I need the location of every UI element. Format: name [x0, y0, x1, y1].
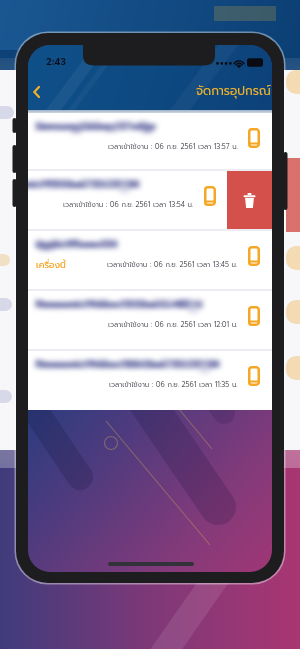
staticText: Panasonic Pinbox 50A Dual TD LTE_D4	[38, 356, 223, 370]
staticText: Panasonic P55 Dual TD LTE_D4	[28, 176, 137, 190]
staticText: Apple iPhone 6 K	[34, 236, 117, 250]
staticText: Panasonic Pinbox 50A Dual TD LTE_D4	[35, 356, 220, 370]
staticText: เครื่องนี้	[36, 258, 66, 272]
staticText: เวลาเข้าใช้งาน : 06 ก.ย. 2561 เวลา 13:54…	[63, 199, 194, 210]
staticText: Panasonic Pinbox 50A Dual TD LTE_D4	[32, 356, 217, 370]
staticText: 2:43	[46, 54, 66, 67]
staticText: Panasonic P55 Dual TD LTE_D4	[28, 176, 141, 190]
staticText: Samsung Galaxy S7 edge	[35, 118, 156, 132]
staticText: Panasonic Pinbox 53 Dual G-462_A	[36, 296, 204, 310]
staticText: Apple iPhone 6 K	[39, 236, 122, 250]
button[interactable]	[28, 171, 228, 229]
button[interactable]: จัดการอุปกรณ์	[196, 82, 271, 100]
staticText: Panasonic Pinbox 53 Dual G-462_A	[31, 296, 199, 310]
staticText: Panasonic Pinbox 50A Dual TD LTE_D4	[39, 356, 224, 370]
button[interactable]	[28, 291, 272, 349]
staticText: Panasonic P55 Dual TD LTE_D4	[28, 176, 136, 190]
staticText: Samsung Galaxy S7 edge	[39, 118, 160, 132]
staticText: Panasonic Pinbox 50A Dual TD LTE_D4	[31, 356, 216, 370]
staticText: Panasonic Pinbox 53 Dual G-462_A	[39, 296, 207, 310]
staticText: Panasonic P55 Dual TD LTE_D4	[28, 176, 144, 190]
button[interactable]: Delete	[227, 171, 272, 229]
staticText: Panasonic Pinbox 50A Dual TD LTE_D4	[36, 356, 221, 370]
staticText: Apple iPhone 6 K	[35, 236, 118, 250]
staticText: Apple iPhone 6 K	[32, 236, 115, 250]
staticText: Apple iPhone 6 K	[38, 236, 121, 250]
staticText: เวลาเข้าใช้งาน : 06 ก.ย. 2561 เวลา 12:01…	[108, 319, 238, 330]
staticText: Samsung Galaxy S7 edge	[31, 118, 152, 132]
staticText: Samsung Galaxy S7 edge	[34, 118, 155, 132]
staticText: Samsung Galaxy S7 edge	[32, 118, 153, 132]
staticText: Apple iPhone 6 K	[36, 236, 119, 250]
button[interactable]	[28, 113, 272, 169]
staticText: Samsung Galaxy S7 edge	[38, 118, 159, 132]
staticText: Panasonic Pinbox 53 Dual G-462_A	[32, 296, 200, 310]
staticText: Panasonic Pinbox 53 Dual G-462_A	[38, 296, 206, 310]
staticText: Panasonic P55 Dual TD LTE_D4	[28, 176, 140, 190]
staticText: Panasonic P55 Dual TD LTE_D4	[28, 176, 139, 190]
staticText: Panasonic Pinbox 53 Dual G-462_A	[34, 296, 202, 310]
staticText: Panasonic P55 Dual TD LTE_D4	[28, 176, 143, 190]
staticText: เวลาเข้าใช้งาน : 06 ก.ย. 2561 เวลา 13:45…	[107, 259, 238, 270]
button[interactable]	[28, 351, 272, 408]
staticText: Apple iPhone 6 K	[31, 236, 114, 250]
staticText: เวลาเข้าใช้งาน : 06 ก.ย. 2561 เวลา 11:35…	[109, 379, 238, 390]
staticText: Samsung Galaxy S7 edge	[36, 118, 157, 132]
staticText: เวลาเข้าใช้งาน : 06 ก.ย. 2561 เวลา 13:57…	[108, 141, 238, 152]
staticText: Panasonic Pinbox 50A Dual TD LTE_D4	[34, 356, 219, 370]
button[interactable]	[28, 231, 272, 289]
button[interactable]: Back	[28, 75, 53, 109]
staticText: Panasonic Pinbox 53 Dual G-462_A	[35, 296, 203, 310]
